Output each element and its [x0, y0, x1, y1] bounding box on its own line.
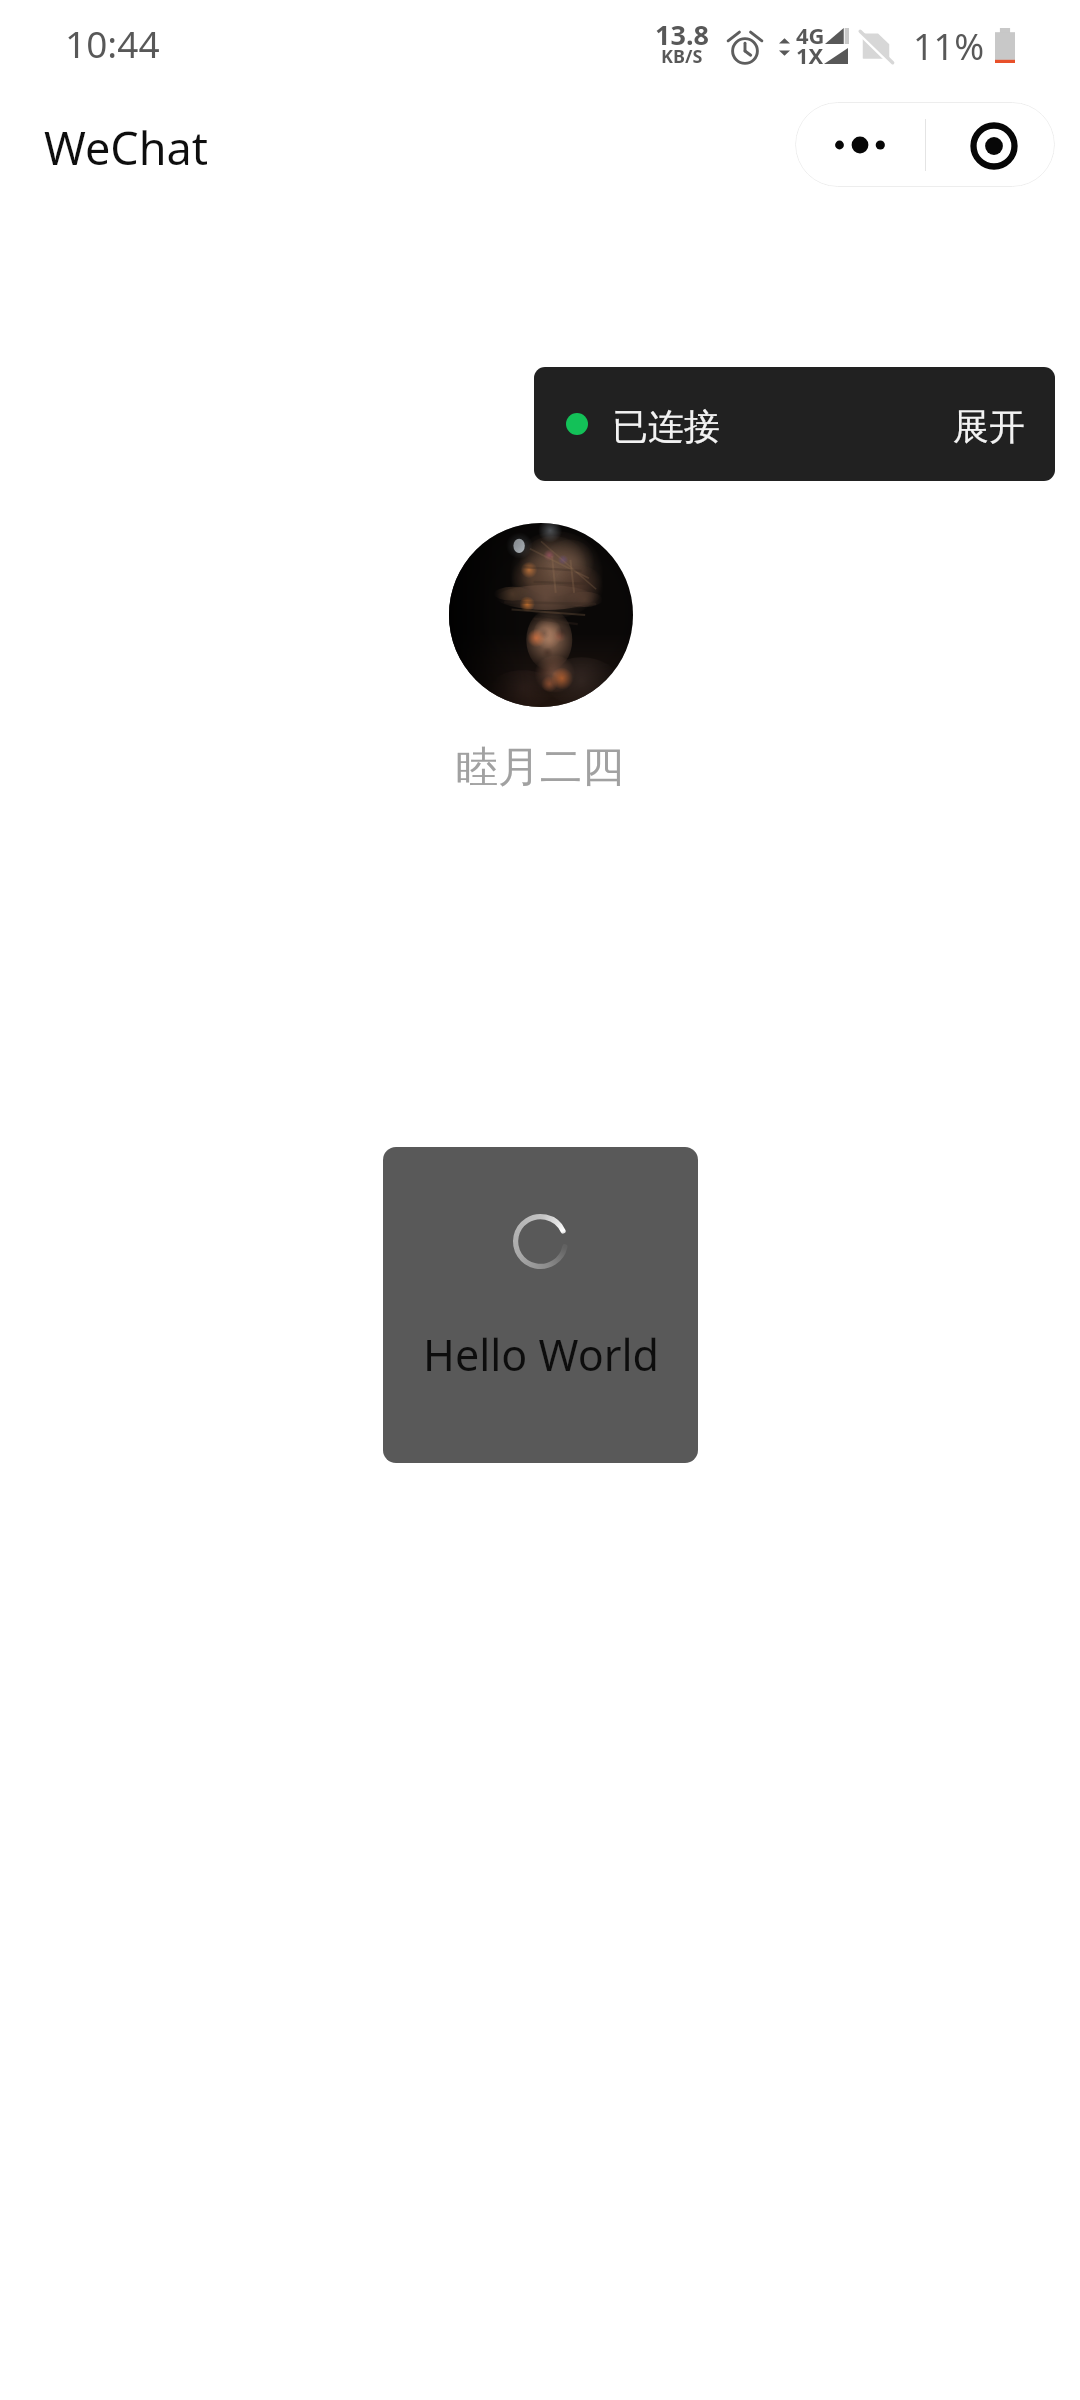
staticText: 1X [796, 40, 824, 70]
button[interactable]: 睦月二四 [456, 741, 624, 794]
staticText: 11% [913, 22, 985, 71]
staticText: Hello World [423, 1325, 659, 1384]
button[interactable]: Close mini program [926, 102, 1055, 187]
staticText: KB/S [661, 44, 703, 69]
staticText: 4G [796, 20, 825, 50]
button[interactable]: 已连接 [534, 367, 1055, 481]
staticText: WeChat [44, 117, 209, 178]
button[interactable]: User avatar [449, 523, 633, 707]
button[interactable]: Hello World [383, 1147, 698, 1463]
staticText: 10:44 [65, 18, 160, 68]
staticText: 展开 [953, 404, 1025, 449]
staticText: 已连接 [612, 404, 720, 449]
button[interactable]: More options [795, 102, 925, 187]
staticText: 13.8 [655, 16, 709, 53]
